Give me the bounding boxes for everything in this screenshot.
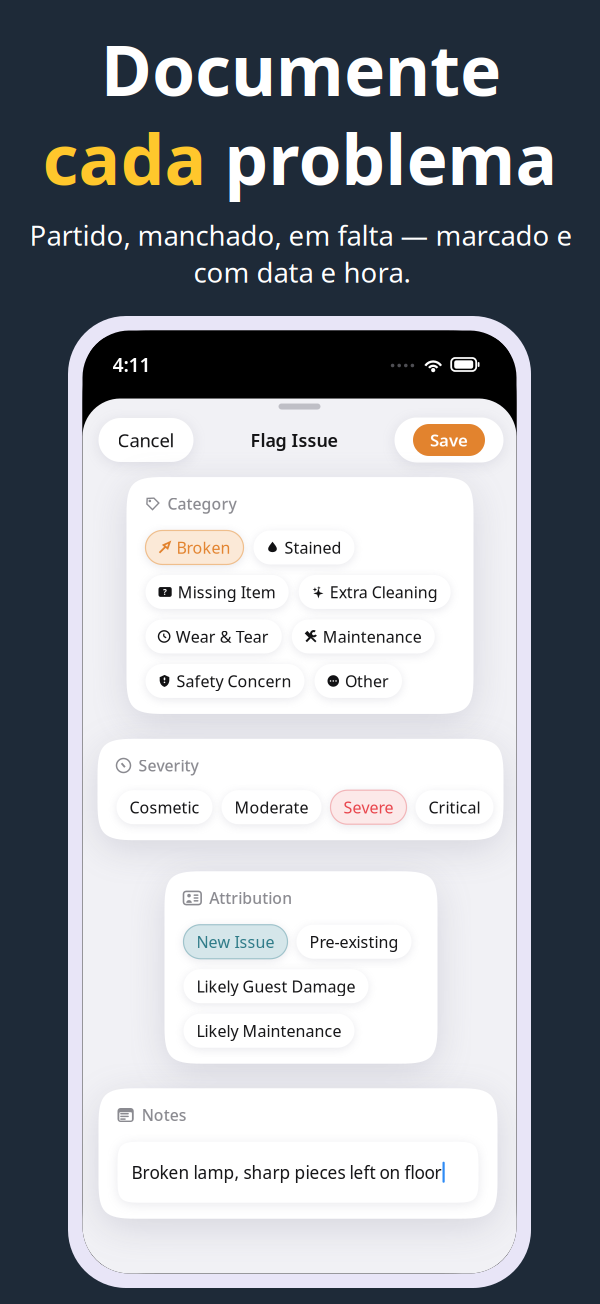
button[interactable]: Stained: [253, 530, 354, 564]
staticText: Category: [167, 493, 236, 514]
staticText: Maintenance: [323, 626, 422, 647]
staticText: Save: [430, 429, 468, 451]
staticText: Notes: [142, 1104, 187, 1126]
staticText: cada: [42, 111, 224, 205]
button[interactable]: Likely Maintenance: [183, 1014, 354, 1048]
button[interactable]: Extra Cleaning: [299, 575, 451, 609]
staticText: Stained: [284, 537, 341, 558]
button[interactable]: Save: [394, 417, 503, 462]
staticText: Wear & Tear: [176, 626, 269, 647]
staticText: Flag Issue: [250, 428, 337, 452]
staticText: Extra Cleaning: [330, 581, 438, 603]
button[interactable]: Wear & Tear: [145, 619, 282, 653]
staticText: New Issue: [196, 931, 274, 953]
button[interactable]: Critical: [415, 790, 493, 824]
staticText: Severe: [343, 796, 393, 818]
staticText: Missing Item: [178, 581, 276, 603]
staticText: Moderate: [234, 796, 308, 818]
staticText: Broken: [176, 537, 230, 558]
button[interactable]: Pre-existing: [296, 925, 411, 959]
staticText: Severity: [138, 755, 198, 776]
staticText: Documente: [101, 22, 501, 116]
button[interactable]: Other: [314, 664, 402, 698]
button[interactable]: Severe: [330, 790, 406, 824]
staticText: Broken lamp, sharp pieces left on floor: [131, 1160, 441, 1184]
staticText: problema: [224, 111, 557, 205]
staticText: Cosmetic: [129, 796, 199, 818]
button[interactable]: Maintenance: [292, 619, 435, 653]
button[interactable]: Broken: [145, 530, 243, 564]
staticText: 4:11: [112, 351, 150, 378]
staticText: Partido, manchado, em falta — marcado e: [29, 216, 572, 254]
button[interactable]: ?: [145, 575, 289, 609]
staticText: Likely Guest Damage: [196, 975, 355, 997]
staticText: Attribution: [209, 887, 292, 909]
staticText: Critical: [428, 796, 480, 818]
staticText: Pre-existing: [309, 931, 398, 953]
staticText: Safety Concern: [176, 670, 291, 692]
staticText: ?: [163, 587, 167, 597]
button[interactable]: Safety Concern: [145, 664, 304, 698]
button[interactable]: Moderate: [221, 790, 321, 824]
staticText: com data e hora.: [193, 253, 410, 291]
button[interactable]: Cosmetic: [116, 790, 212, 824]
staticText: Likely Maintenance: [196, 1020, 341, 1042]
staticText: Other: [345, 670, 389, 692]
button[interactable]: Likely Guest Damage: [183, 969, 368, 1003]
staticText: Cancel: [117, 427, 174, 453]
button[interactable]: Cancel: [98, 418, 193, 462]
button[interactable]: New Issue: [183, 925, 287, 959]
